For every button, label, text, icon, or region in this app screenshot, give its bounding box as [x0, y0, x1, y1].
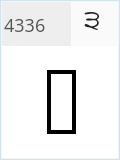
button[interactable]: More options — [71, 2, 118, 46]
staticText: ੩ — [84, 7, 101, 34]
button[interactable]: 4336 — [2, 2, 71, 46]
staticText: 4336 — [4, 13, 46, 38]
